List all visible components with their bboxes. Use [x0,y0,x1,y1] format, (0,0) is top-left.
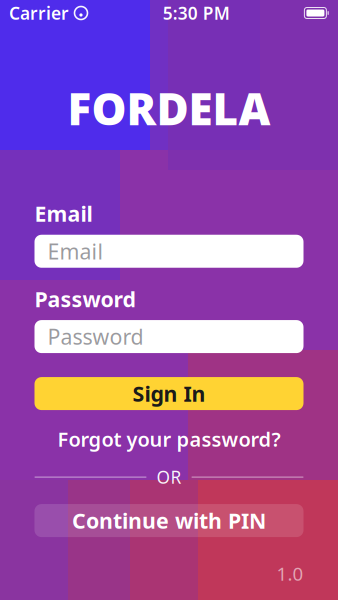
staticText: Sign In [132,379,205,408]
staticText: OR [156,466,181,489]
staticText: FORDELA [67,79,270,137]
staticText: Forgot your password? [57,426,280,452]
staticText: 5:30 PM [163,1,230,24]
staticText: 1.0 [276,561,303,586]
staticText: Carrier [9,1,69,24]
staticText: Email [47,237,103,265]
staticText: Continue with PIN [72,506,266,535]
staticText: Email [34,199,92,228]
staticText: Password [47,322,143,351]
button[interactable]: Continue with PIN [34,504,303,537]
button[interactable]: Sign In [34,377,303,410]
button[interactable]: Forgot your password? [34,428,303,450]
staticText: Password [34,285,135,313]
